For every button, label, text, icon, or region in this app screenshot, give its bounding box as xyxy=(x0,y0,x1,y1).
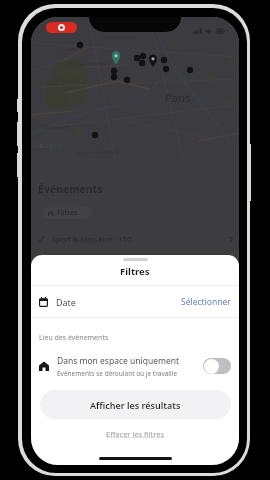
staticText: G xyxy=(33,140,39,150)
staticText: Arc de Triomphe xyxy=(68,60,111,67)
staticText: Dans mon espace uniquement xyxy=(57,355,180,367)
staticText: Lieu des évènements xyxy=(39,333,109,343)
staticText: Sélectionner xyxy=(181,296,231,308)
staticText: Effacer les filtres xyxy=(106,429,165,439)
staticText: Afficher les résultats xyxy=(90,399,181,411)
staticText: Événements xyxy=(38,182,103,196)
staticText: Filtres xyxy=(57,208,78,218)
button[interactable]: Dans mon espace uniquement xyxy=(31,351,239,381)
staticText: Filtres xyxy=(120,265,150,278)
button[interactable]: Date xyxy=(31,286,239,317)
staticText: ogne-Billancourt xyxy=(31,123,70,130)
button[interactable]: Afficher les résultats xyxy=(40,390,231,419)
staticText: Bois de Boulogne xyxy=(62,77,85,90)
staticText: o xyxy=(39,140,44,150)
button[interactable]: Dans mon espace uniquement xyxy=(203,358,231,374)
staticText: Paris xyxy=(165,90,191,105)
staticText: Sport & bien-être · 150 xyxy=(52,234,132,244)
button[interactable]: Filtres xyxy=(42,207,91,219)
button[interactable]: Effacer les filtres xyxy=(31,427,239,441)
staticText: g xyxy=(49,140,54,150)
staticText: Date xyxy=(56,296,76,308)
other: Screen recording xyxy=(46,22,77,33)
staticText: Évènements se déroulant où je travaille xyxy=(57,369,178,378)
